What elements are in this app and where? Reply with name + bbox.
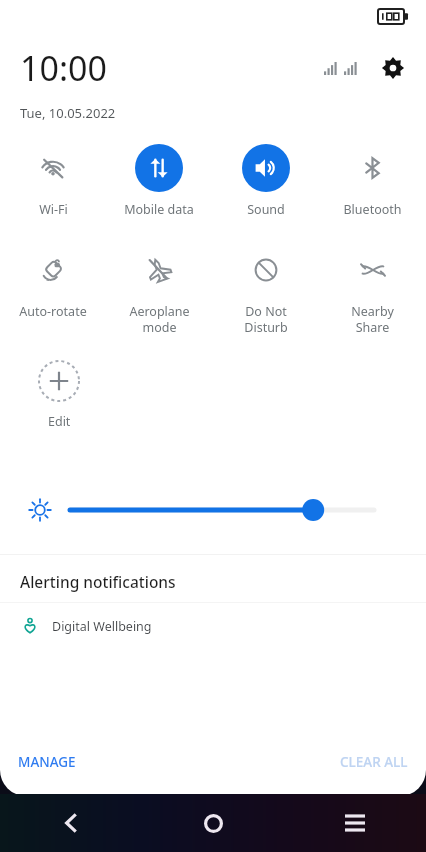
staticText: Sound xyxy=(247,201,285,218)
staticText: Aeroplane mode xyxy=(129,303,190,335)
staticText: Do Not Disturb xyxy=(244,303,288,335)
button[interactable]: MANAGE xyxy=(8,745,86,779)
staticText: Wi-Fi xyxy=(39,201,68,218)
staticText: Tue, 10.05.2022 xyxy=(20,104,116,122)
button[interactable]: Mobile data xyxy=(106,142,212,220)
staticText: Digital Wellbeing xyxy=(52,618,152,635)
button[interactable] xyxy=(0,492,426,528)
button[interactable]: CLEAR ALL xyxy=(330,745,418,779)
button[interactable]: Back xyxy=(0,794,142,852)
button[interactable]: Wi-Fi xyxy=(0,142,106,220)
button[interactable]: Auto-rotate xyxy=(0,244,106,322)
button[interactable]: Edit quick settings xyxy=(37,359,81,430)
staticText: CLEAR ALL xyxy=(340,753,408,771)
button[interactable]: Home xyxy=(142,794,284,852)
staticText: Bluetooth xyxy=(343,201,402,218)
staticText: Edit xyxy=(48,413,71,430)
staticText: Nearby Share xyxy=(351,303,394,335)
staticText: Mobile data xyxy=(124,201,194,218)
button[interactable]: Aeroplane mode xyxy=(106,244,212,337)
staticText: 10:00 xyxy=(20,45,107,91)
button[interactable]: Sound xyxy=(212,142,319,220)
button[interactable]: Do Not Disturb xyxy=(212,244,319,337)
button[interactable]: Bluetooth xyxy=(319,142,426,220)
button[interactable]: Recent apps xyxy=(284,794,426,852)
staticText: Auto-rotate xyxy=(19,303,87,320)
button[interactable]: Settings xyxy=(376,51,410,85)
staticText: MANAGE xyxy=(18,753,76,771)
button[interactable]: Digital Wellbeing xyxy=(0,603,426,649)
staticText: Alerting notifications xyxy=(20,571,176,592)
button[interactable]: Nearby Share xyxy=(319,244,426,337)
